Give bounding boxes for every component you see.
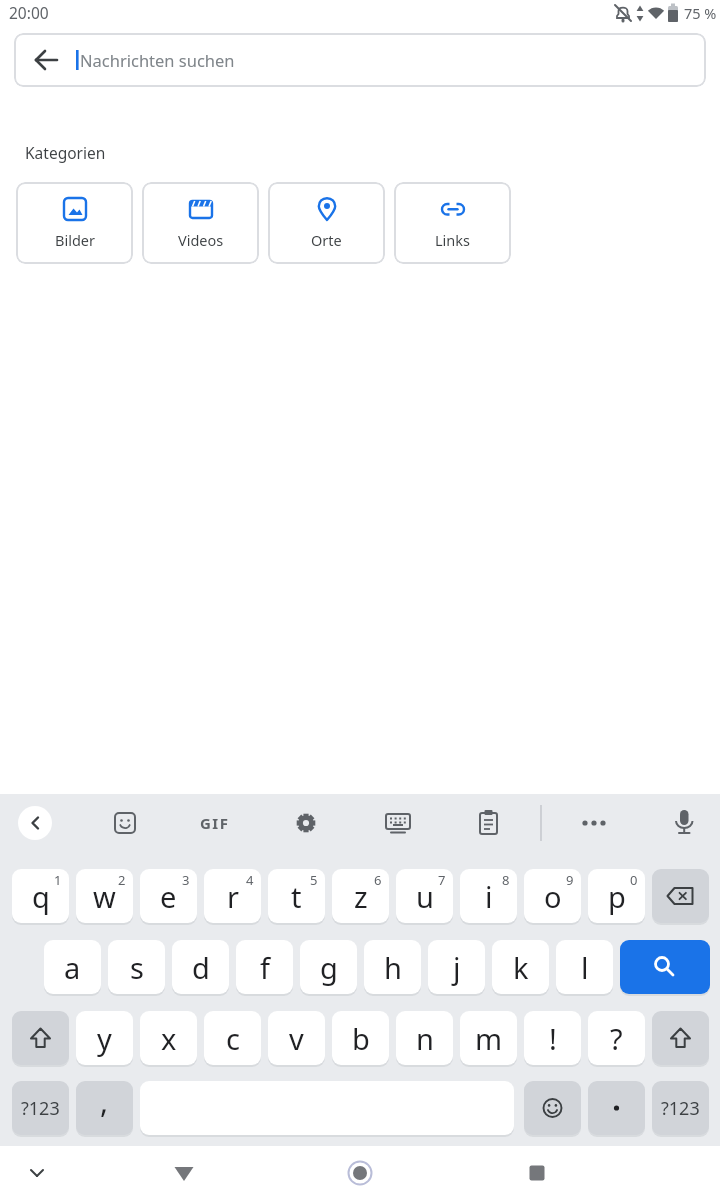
- staticText: 75 %: [684, 3, 717, 23]
- button[interactable]: ?123: [12, 1081, 69, 1135]
- staticText: 7: [438, 871, 446, 889]
- staticText: 20:00: [9, 2, 49, 23]
- staticText: 5: [310, 871, 318, 889]
- staticText: Nachrichten suchen: [80, 49, 235, 71]
- staticText: l: [581, 948, 589, 987]
- staticText: Links: [435, 230, 470, 250]
- staticText: ?123: [661, 1096, 700, 1121]
- staticText: k: [513, 948, 529, 987]
- button[interactable]: GIF: [192, 806, 238, 840]
- button[interactable]: h: [364, 940, 421, 994]
- button[interactable]: [588, 1081, 645, 1135]
- button[interactable]: Links: [394, 182, 511, 264]
- staticText: p: [608, 877, 626, 916]
- button[interactable]: ?: [588, 1011, 645, 1065]
- staticText: ,: [100, 1081, 109, 1122]
- staticText: g: [320, 948, 338, 987]
- staticText: t: [291, 877, 302, 916]
- button[interactable]: [15, 1151, 59, 1195]
- button[interactable]: o: [524, 869, 581, 923]
- button[interactable]: u: [396, 869, 453, 923]
- button[interactable]: r: [204, 869, 261, 923]
- button[interactable]: [376, 801, 420, 845]
- staticText: n: [416, 1019, 434, 1058]
- button[interactable]: s: [108, 940, 165, 994]
- staticText: u: [416, 877, 434, 916]
- button[interactable]: [515, 1151, 559, 1195]
- staticText: 6: [374, 871, 382, 889]
- staticText: s: [130, 948, 144, 987]
- button[interactable]: j: [428, 940, 485, 994]
- button[interactable]: i: [460, 869, 517, 923]
- staticText: 3: [182, 871, 190, 889]
- staticText: 0: [630, 871, 638, 889]
- button[interactable]: b: [332, 1011, 389, 1065]
- button[interactable]: z: [332, 869, 389, 923]
- button[interactable]: [524, 1081, 581, 1135]
- button[interactable]: [338, 1151, 382, 1195]
- button[interactable]: l: [556, 940, 613, 994]
- staticText: a: [64, 948, 81, 987]
- button[interactable]: a: [44, 940, 101, 994]
- staticText: f: [260, 948, 270, 987]
- button[interactable]: [662, 801, 706, 845]
- button[interactable]: [103, 801, 147, 845]
- button[interactable]: Videos: [142, 182, 259, 264]
- button[interactable]: k: [492, 940, 549, 994]
- staticText: q: [32, 877, 50, 916]
- staticText: r: [227, 877, 239, 916]
- staticText: i: [485, 877, 493, 916]
- button[interactable]: y: [76, 1011, 133, 1065]
- staticText: 1: [54, 871, 62, 889]
- button[interactable]: n: [396, 1011, 453, 1065]
- button[interactable]: [162, 1151, 206, 1195]
- button[interactable]: q: [12, 869, 69, 923]
- button[interactable]: p: [588, 869, 645, 923]
- button[interactable]: ?123: [652, 1081, 709, 1135]
- staticText: Kategorien: [25, 142, 106, 163]
- button[interactable]: t: [268, 869, 325, 923]
- button[interactable]: [652, 869, 709, 923]
- button[interactable]: c: [204, 1011, 261, 1065]
- staticText: j: [453, 948, 461, 987]
- button[interactable]: [284, 801, 328, 845]
- button[interactable]: Bilder: [16, 182, 133, 264]
- staticText: ?: [610, 1019, 623, 1058]
- button[interactable]: Orte: [268, 182, 385, 264]
- button[interactable]: m: [460, 1011, 517, 1065]
- staticText: m: [475, 1019, 503, 1058]
- button[interactable]: [12, 1011, 69, 1065]
- staticText: d: [192, 948, 210, 987]
- staticText: e: [160, 877, 177, 916]
- button[interactable]: x: [140, 1011, 197, 1065]
- staticText: 4: [246, 871, 254, 889]
- button[interactable]: e: [140, 869, 197, 923]
- button[interactable]: w: [76, 869, 133, 923]
- staticText: Bilder: [55, 230, 95, 250]
- button[interactable]: ,: [76, 1081, 133, 1135]
- staticText: y: [97, 1019, 112, 1058]
- button[interactable]: [572, 801, 616, 845]
- staticText: Orte: [311, 230, 342, 250]
- button[interactable]: Nachrichten suchen: [14, 33, 706, 87]
- staticText: ?123: [21, 1096, 60, 1121]
- button[interactable]: [466, 801, 510, 845]
- button[interactable]: d: [172, 940, 229, 994]
- staticText: v: [289, 1019, 304, 1058]
- staticText: 8: [502, 871, 510, 889]
- button[interactable]: [652, 1011, 709, 1065]
- staticText: c: [226, 1019, 240, 1058]
- button[interactable]: g: [300, 940, 357, 994]
- button[interactable]: !: [524, 1011, 581, 1065]
- button[interactable]: v: [268, 1011, 325, 1065]
- button[interactable]: [620, 940, 710, 994]
- button[interactable]: [18, 806, 52, 840]
- staticText: b: [352, 1019, 370, 1058]
- button[interactable]: f: [236, 940, 293, 994]
- staticText: 9: [566, 871, 574, 889]
- staticText: Videos: [178, 230, 224, 250]
- staticText: GIF: [200, 813, 230, 833]
- staticText: z: [354, 877, 368, 916]
- staticText: x: [161, 1019, 177, 1058]
